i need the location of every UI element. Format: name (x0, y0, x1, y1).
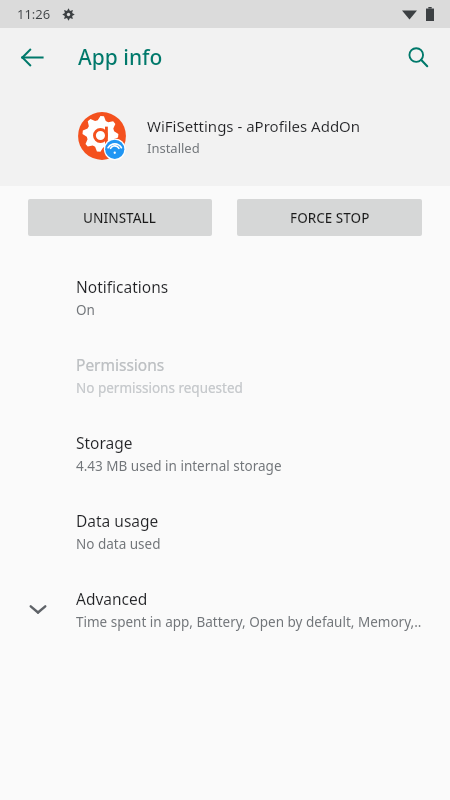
button[interactable]: Notifications (0, 258, 450, 336)
button[interactable]: Advanced (0, 570, 450, 648)
staticText: Advanced (76, 588, 148, 609)
staticText: Permissions (76, 354, 165, 375)
staticText: App info (78, 43, 163, 72)
button[interactable]: Back (8, 33, 56, 81)
button[interactable]: Search (394, 33, 442, 81)
staticText: Storage (76, 432, 133, 453)
staticText: No permissions requested (76, 379, 243, 397)
button[interactable]: Data usage (0, 492, 450, 570)
button[interactable]: Permissions (0, 336, 450, 414)
button[interactable]: Storage (0, 414, 450, 492)
button[interactable]: WiFiSettings - aProfiles AddOn (0, 86, 450, 186)
staticText: No data used (76, 535, 161, 553)
staticText: FORCE STOP (290, 209, 370, 227)
staticText: Time spent in app, Battery, Open by defa… (76, 613, 422, 631)
staticText: On (76, 301, 95, 319)
staticText: 11:26 (17, 5, 51, 23)
staticText: 4.43 MB used in internal storage (76, 457, 282, 475)
staticText: WiFiSettings - aProfiles AddOn (147, 116, 361, 136)
button[interactable]: UNINSTALL (28, 199, 212, 236)
staticText: Notifications (76, 276, 169, 297)
staticText: UNINSTALL (83, 209, 157, 227)
button[interactable]: FORCE STOP (237, 199, 422, 236)
staticText: Installed (147, 139, 200, 157)
staticText: Data usage (76, 510, 159, 531)
